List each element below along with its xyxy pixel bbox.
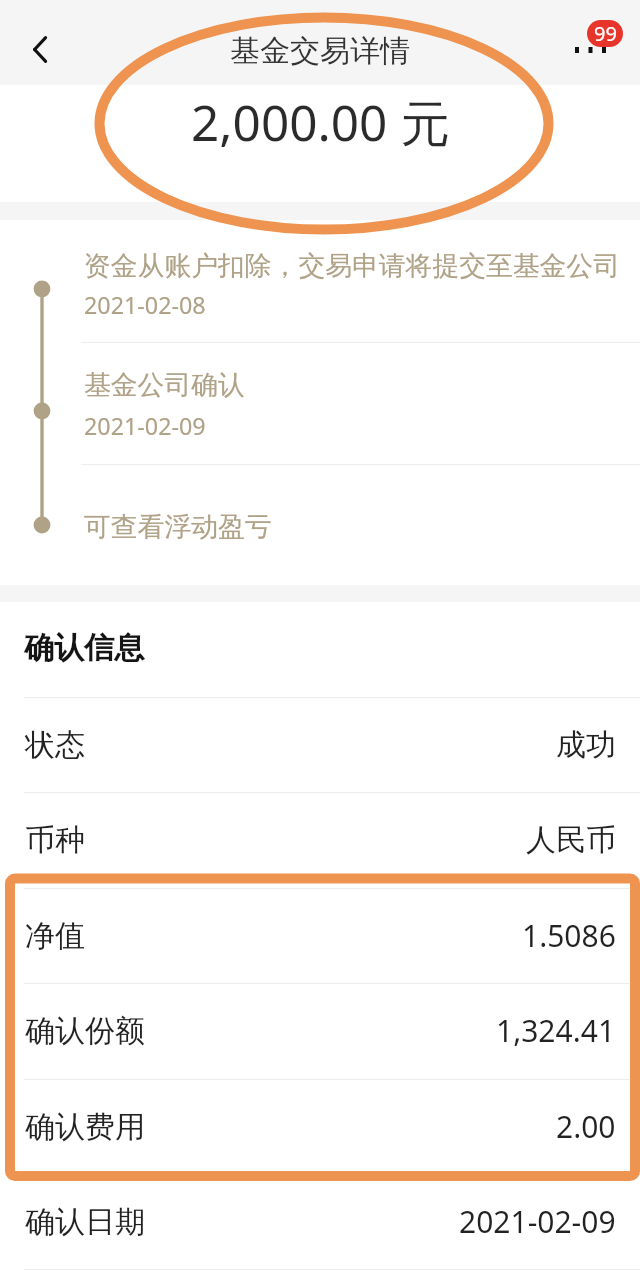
staticText: 1,324.41: [496, 1010, 616, 1051]
button[interactable]: 确认份额: [0, 983, 640, 1078]
button[interactable]: Back: [0, 0, 80, 85]
staticText: 确认份额: [25, 1012, 145, 1050]
staticText: 基金公司确认: [84, 368, 245, 402]
staticText: 可查看浮动盈亏: [84, 510, 272, 544]
button[interactable]: 净值: [0, 888, 640, 983]
staticText: 2021-02-09: [84, 410, 206, 442]
button[interactable]: 确认日期: [0, 1174, 640, 1269]
staticText: 2021-02-09: [459, 1201, 616, 1242]
staticText: 状态: [25, 726, 85, 764]
button[interactable]: 币种: [0, 792, 640, 887]
staticText: 2.00: [556, 1106, 616, 1147]
staticText: 资金从账户扣除，交易申请将提交至基金公司: [84, 249, 620, 283]
staticText: 2,000.00 元: [191, 88, 450, 156]
staticText: 确认信息: [24, 629, 144, 667]
button[interactable]: 状态: [0, 697, 640, 792]
staticText: 1.5086: [522, 915, 616, 956]
staticText: 确认日期: [25, 1203, 145, 1241]
staticText: 币种: [25, 821, 85, 859]
staticText: 2021-02-08: [84, 289, 206, 321]
staticText: 人民币: [526, 821, 616, 859]
staticText: 确认费用: [25, 1108, 145, 1146]
staticText: 基金交易详情: [230, 32, 410, 70]
staticText: 成功: [556, 726, 616, 764]
button[interactable]: 确认费用: [0, 1079, 640, 1174]
button[interactable]: More options: [554, 0, 640, 85]
staticText: 99: [594, 20, 617, 47]
staticText: 净值: [25, 917, 85, 955]
